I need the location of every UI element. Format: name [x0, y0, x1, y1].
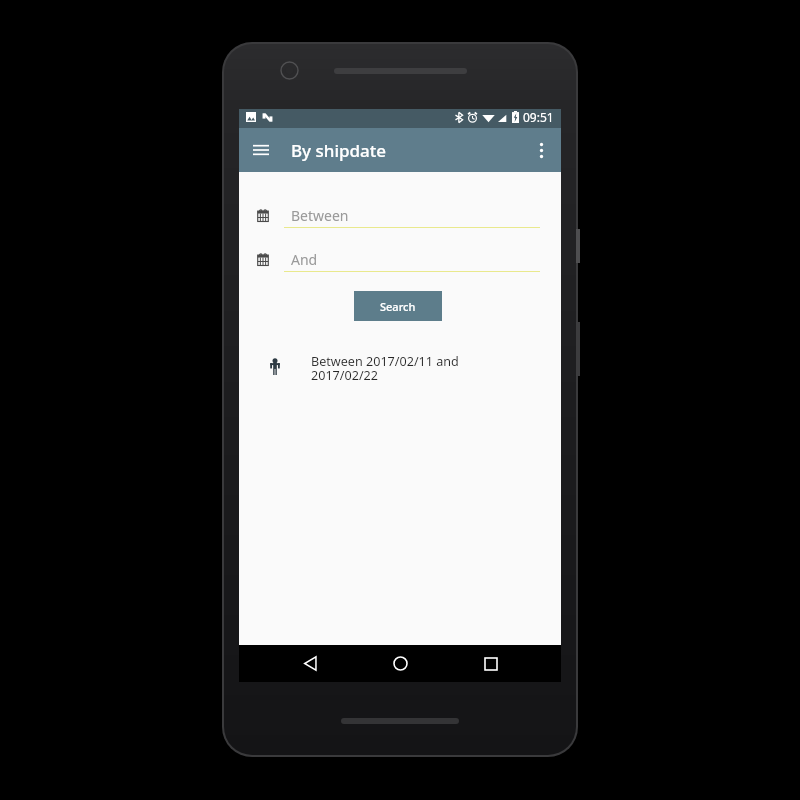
- button[interactable]: Back: [290, 645, 330, 682]
- button[interactable]: And: [239, 250, 561, 272]
- staticText: Between 2017/02/11 and 2017/02/22: [311, 353, 473, 384]
- button[interactable]: More options: [525, 134, 557, 166]
- button[interactable]: Search: [354, 291, 442, 321]
- staticText: By shipdate: [291, 139, 387, 162]
- button[interactable]: Home: [380, 645, 420, 682]
- staticText: Search: [380, 299, 416, 314]
- staticText: 09:51: [523, 109, 554, 125]
- button[interactable]: Between 2017/02/11 and 2017/02/22: [239, 353, 561, 384]
- staticText: And: [291, 250, 318, 269]
- button[interactable]: Open navigation menu: [244, 133, 278, 167]
- button[interactable]: Recent apps: [471, 645, 511, 682]
- button[interactable]: Between: [239, 206, 561, 228]
- staticText: Between: [291, 206, 349, 225]
